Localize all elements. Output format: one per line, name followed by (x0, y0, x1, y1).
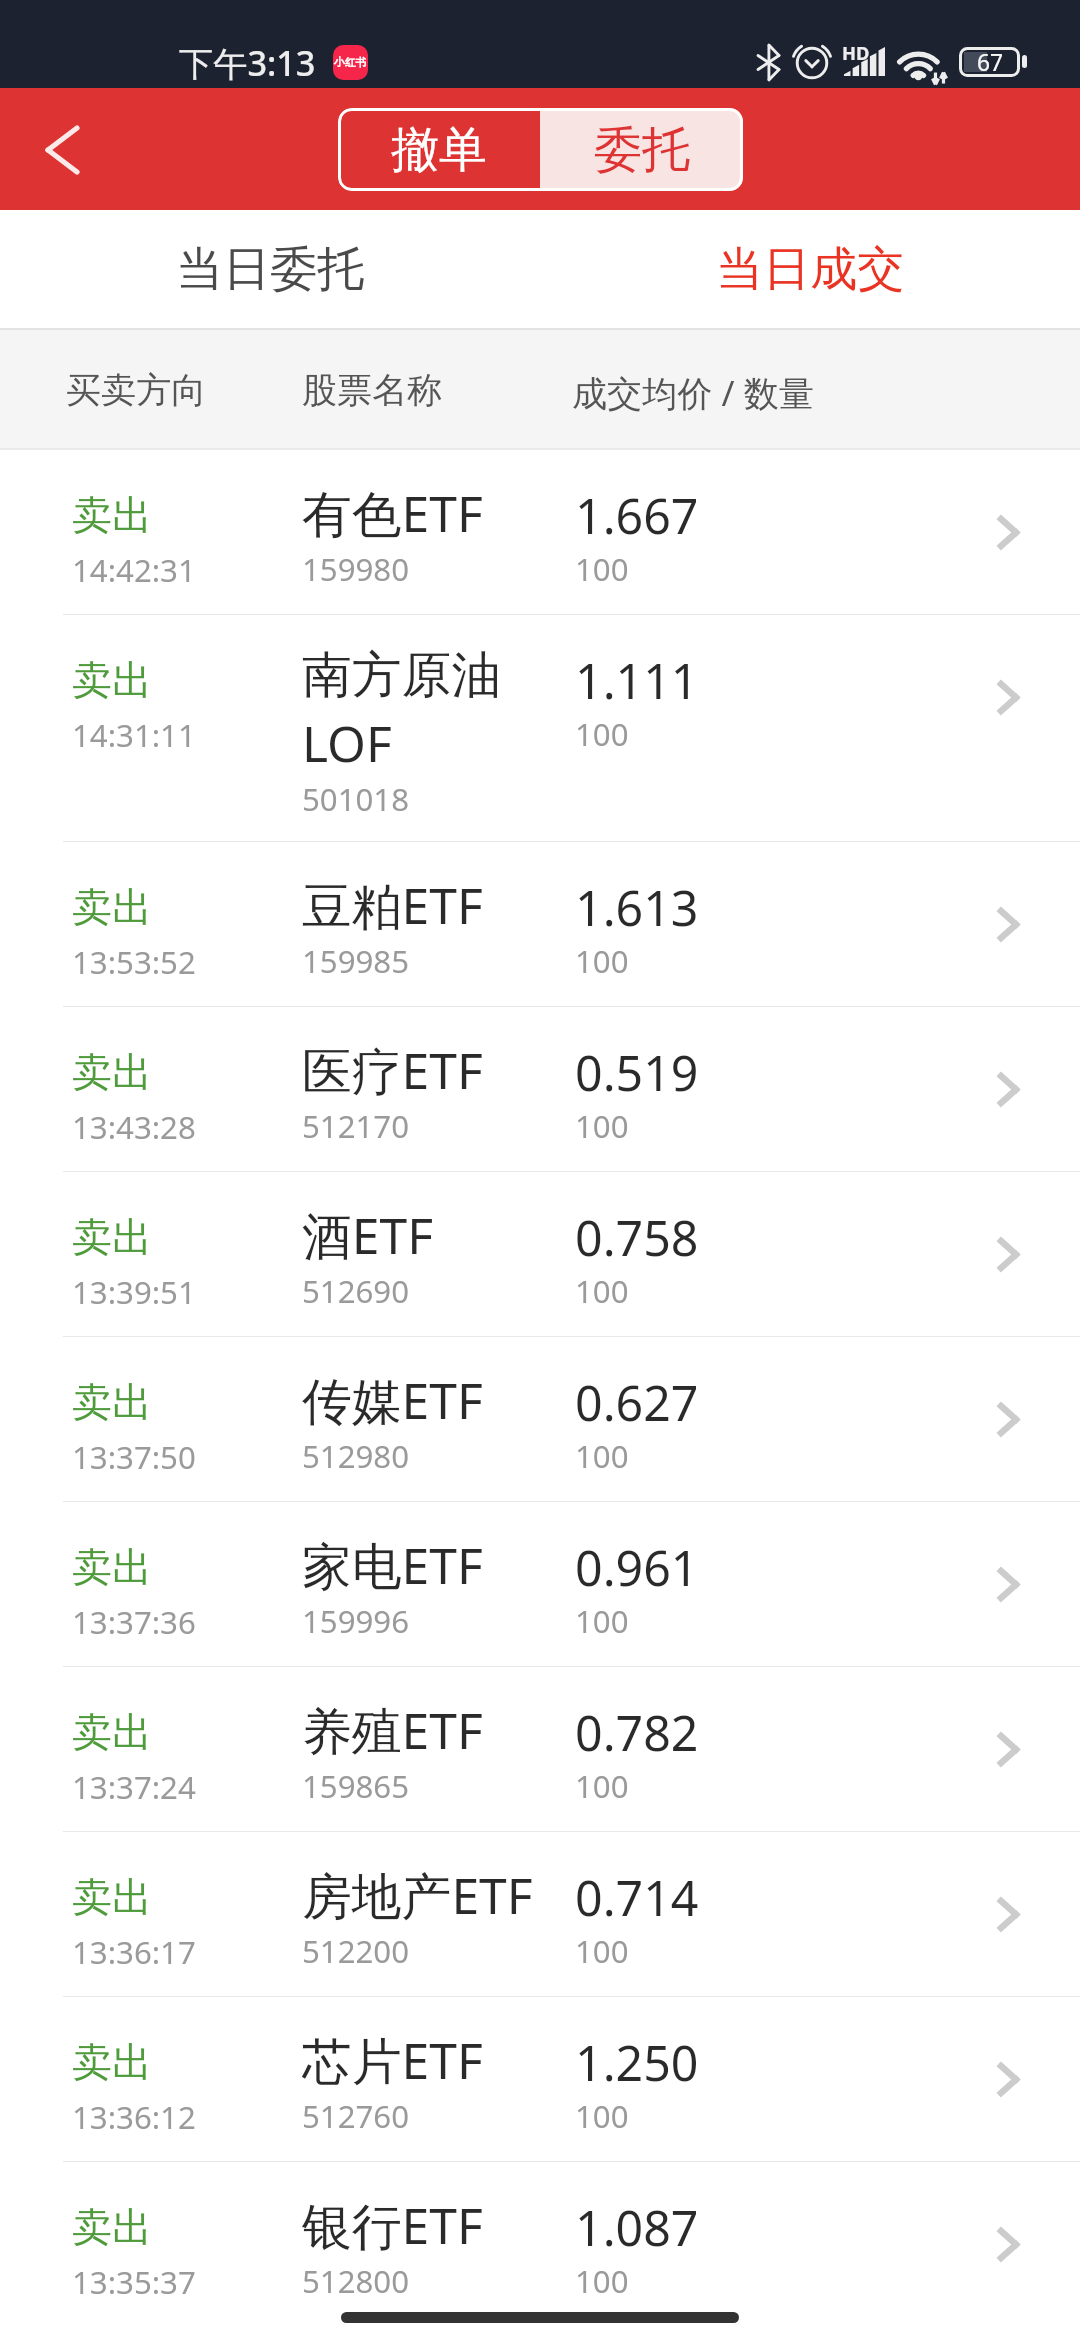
staticText: 100 (575, 940, 629, 982)
staticText: 13:35:37 (72, 2261, 196, 2303)
staticText: 卖出 (72, 883, 152, 933)
staticText: 13:53:52 (72, 941, 196, 983)
staticText: 14:42:31 (72, 549, 196, 591)
staticText: 159980 (302, 548, 410, 590)
staticText: 0.782 (575, 1699, 699, 1765)
staticText: 当日委托 (176, 240, 365, 299)
staticText: 512200 (302, 1930, 410, 1972)
staticText: 卖出 (72, 1873, 152, 1923)
button[interactable]: Back (0, 88, 123, 210)
staticText: 100 (575, 2095, 629, 2137)
staticText: 股票名称 (302, 368, 443, 412)
staticText: 酒ETF (302, 1201, 434, 1269)
staticText: 卖出 (72, 1048, 152, 1098)
staticText: 0.758 (575, 1204, 699, 1270)
staticText: 0.627 (575, 1369, 699, 1435)
staticText: 100 (575, 1435, 629, 1477)
button[interactable]: 卖出 (0, 1337, 1080, 1501)
staticText: 0.961 (575, 1534, 699, 1600)
staticText: 14:31:11 (72, 714, 196, 756)
button[interactable]: 卖出 (0, 1832, 1080, 1996)
staticText: 159996 (302, 1600, 410, 1642)
staticText: 小红书 (334, 56, 367, 70)
button[interactable]: 卖出 (0, 1667, 1080, 1831)
staticText: 银行ETF (302, 2191, 483, 2259)
staticText: 159985 (302, 940, 410, 982)
staticText: 13:36:12 (72, 2096, 196, 2138)
staticText: 100 (575, 1105, 629, 1147)
staticText: 医疗ETF (302, 1036, 483, 1104)
staticText: 100 (575, 1270, 629, 1312)
staticText: 豆粕ETF (302, 871, 483, 939)
staticText: 512980 (302, 1435, 410, 1477)
staticText: 100 (575, 2260, 629, 2302)
staticText: 159865 (302, 1765, 410, 1807)
staticText: 100 (575, 1600, 629, 1642)
staticText: 13:39:51 (72, 1271, 196, 1313)
staticText: 512800 (302, 2260, 410, 2302)
staticText: 下午3:13 (179, 39, 316, 86)
staticText: 13:37:24 (72, 1766, 196, 1808)
staticText: 撤单 (391, 120, 487, 180)
button[interactable]: 卖出 (0, 1007, 1080, 1171)
staticText: 0.714 (575, 1864, 699, 1930)
staticText: 卖出 (72, 1213, 152, 1263)
staticText: 13:43:28 (72, 1106, 196, 1148)
staticText: 0.519 (575, 1039, 699, 1105)
button[interactable]: 当日成交 (540, 210, 1080, 328)
staticText: 13:37:36 (72, 1601, 196, 1643)
button[interactable]: 卖出 (0, 842, 1080, 1006)
staticText: 100 (575, 1765, 629, 1807)
staticText: 1.667 (575, 482, 699, 548)
button[interactable]: 撤单 (338, 108, 540, 191)
staticText: 芯片ETF (302, 2026, 483, 2094)
staticText: 卖出 (72, 1708, 152, 1758)
staticText: 1.613 (575, 874, 699, 940)
staticText: 南方原油LOF (302, 644, 578, 777)
staticText: HD (842, 40, 870, 65)
staticText: 成交均价 / 数量 (572, 368, 814, 416)
button[interactable]: 卖出 (0, 450, 1080, 614)
button[interactable]: 卖出 (0, 615, 1080, 841)
button[interactable]: 卖出 (0, 1502, 1080, 1666)
staticText: 买卖方向 (66, 368, 207, 412)
staticText: 卖出 (72, 1543, 152, 1593)
staticText: 100 (575, 713, 629, 755)
staticText: 委托 (594, 120, 690, 180)
button[interactable]: 委托 (540, 108, 743, 191)
staticText: 当日成交 (716, 240, 905, 299)
staticText: 传媒ETF (302, 1366, 483, 1434)
staticText: 卖出 (72, 1378, 152, 1428)
staticText: 100 (575, 548, 629, 590)
staticText: 卖出 (72, 491, 152, 541)
staticText: 13:36:17 (72, 1931, 196, 1973)
button[interactable]: 卖出 (0, 1172, 1080, 1336)
button[interactable]: 当日委托 (0, 210, 540, 328)
staticText: 房地产ETF (302, 1861, 533, 1929)
staticText: 512760 (302, 2095, 410, 2137)
staticText: 卖出 (72, 656, 152, 706)
staticText: 100 (575, 1930, 629, 1972)
button[interactable]: 卖出 (0, 1997, 1080, 2161)
button[interactable]: 卖出 (0, 2162, 1080, 2326)
staticText: 501018 (302, 778, 410, 820)
staticText: 卖出 (72, 2203, 152, 2253)
staticText: 13:37:50 (72, 1436, 196, 1478)
staticText: 1.250 (575, 2029, 699, 2095)
staticText: 家电ETF (302, 1531, 483, 1599)
staticText: 养殖ETF (302, 1696, 483, 1764)
staticText: 1.087 (575, 2194, 699, 2260)
staticText: 512170 (302, 1105, 410, 1147)
staticText: 卖出 (72, 2038, 152, 2088)
staticText: 512690 (302, 1270, 410, 1312)
staticText: 67 (977, 47, 1004, 78)
staticText: 1.111 (575, 647, 699, 713)
staticText: 有色ETF (302, 479, 483, 547)
